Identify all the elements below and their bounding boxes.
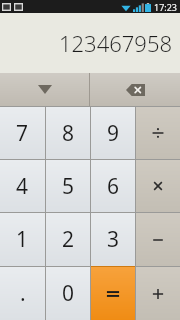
staticText: 8	[62, 119, 75, 148]
button[interactable]: 8	[46, 107, 90, 159]
button[interactable]: 0	[46, 267, 90, 320]
staticText: 1	[16, 225, 29, 254]
button[interactable]: Multiply	[136, 160, 180, 212]
staticText: 123467958	[58, 28, 172, 58]
button[interactable]: 6	[91, 160, 135, 212]
button[interactable]: 1	[0, 213, 45, 266]
button[interactable]: Add	[136, 267, 180, 320]
staticText: .	[20, 279, 26, 308]
staticText: 6	[107, 172, 120, 201]
staticText: 0	[62, 279, 75, 308]
button[interactable]: Subtract	[136, 213, 180, 266]
staticText: 7	[16, 119, 29, 148]
button[interactable]: .	[0, 267, 45, 320]
button[interactable]	[91, 267, 135, 320]
staticText: 4	[16, 172, 29, 201]
staticText: 9	[107, 119, 120, 148]
staticText: 17:23	[154, 1, 178, 13]
button[interactable]: 3	[91, 213, 135, 266]
button[interactable]: 7	[0, 107, 45, 159]
button[interactable]: 5	[46, 160, 90, 212]
staticText: 3	[107, 225, 120, 254]
button[interactable]: Divide	[136, 107, 180, 159]
button[interactable]: 9	[91, 107, 135, 159]
staticText: 5	[62, 172, 75, 201]
button[interactable]: 2	[46, 213, 90, 266]
button[interactable]: Delete	[90, 73, 180, 106]
button[interactable]: 4	[0, 160, 45, 212]
staticText: 2	[62, 225, 75, 254]
button[interactable]: Show advanced panel	[0, 73, 89, 106]
